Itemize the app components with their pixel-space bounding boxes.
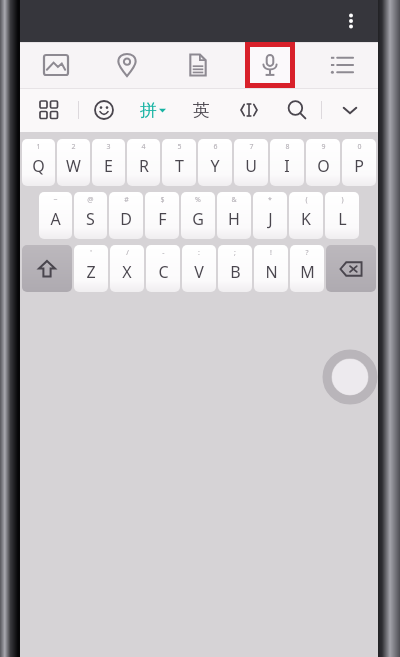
staticText: ; (234, 248, 236, 258)
staticText: 拼 (140, 100, 157, 121)
button[interactable]: Floating assistant (326, 353, 374, 401)
staticText: ) (341, 195, 344, 205)
staticText: N (265, 261, 278, 283)
staticText: W (66, 155, 81, 177)
staticText: G (192, 208, 204, 230)
staticText: 0 (357, 142, 362, 152)
button[interactable]: 1 (22, 139, 55, 186)
button[interactable]: 8 (270, 139, 304, 186)
button[interactable]: Hide keyboard (322, 88, 378, 132)
staticText: / (126, 248, 129, 258)
button[interactable]: ; (218, 245, 252, 292)
staticText: C (158, 261, 169, 283)
button[interactable]: 3 (92, 139, 125, 186)
button[interactable]: Insert image (20, 42, 91, 88)
staticText: J (268, 208, 273, 230)
button[interactable]: Keyboard layouts (20, 88, 78, 132)
staticText: Q (32, 155, 45, 177)
staticText: 8 (285, 142, 290, 152)
button[interactable]: $ (145, 192, 179, 239)
staticText: S (86, 208, 95, 230)
staticText: 英 (193, 100, 210, 121)
button[interactable]: 拼 (128, 88, 177, 132)
staticText: U (245, 155, 257, 177)
staticText: $ (160, 195, 165, 205)
staticText: * (268, 195, 272, 205)
staticText: M (300, 261, 315, 283)
staticText: ! (270, 248, 272, 258)
staticText: & (231, 195, 237, 205)
staticText: E (104, 155, 113, 177)
button[interactable]: ) (325, 192, 359, 239)
button[interactable]: List (306, 42, 378, 88)
staticText: % (195, 195, 201, 205)
button[interactable]: More options (338, 8, 364, 34)
button[interactable]: & (217, 192, 251, 239)
button[interactable]: * (253, 192, 287, 239)
button[interactable]: ! (254, 245, 288, 292)
button[interactable]: ' (74, 245, 108, 292)
staticText: B (230, 261, 241, 283)
staticText: 9 (321, 142, 326, 152)
button[interactable]: Location (91, 42, 162, 88)
button[interactable]: ~ (39, 192, 72, 239)
staticText: 2 (71, 142, 76, 152)
button[interactable]: Search (273, 88, 321, 132)
staticText: 5 (177, 142, 182, 152)
button[interactable]: Backspace (326, 245, 376, 292)
staticText: F (158, 208, 167, 230)
staticText: 7 (249, 142, 254, 152)
staticText: 6 (213, 142, 218, 152)
button[interactable]: Symbols (225, 88, 273, 132)
staticText: : (198, 248, 200, 258)
staticText: ( (305, 195, 308, 205)
staticText: P (354, 155, 364, 177)
button[interactable]: % (181, 192, 215, 239)
button[interactable]: 4 (127, 139, 160, 186)
staticText: H (228, 208, 240, 230)
staticText: X (122, 261, 132, 283)
staticText: Y (210, 155, 220, 177)
staticText: T (175, 155, 184, 177)
button[interactable]: / (110, 245, 144, 292)
button[interactable]: 9 (306, 139, 340, 186)
button[interactable]: Voice input (234, 42, 306, 88)
staticText: - (162, 248, 165, 258)
button[interactable]: Emoji (79, 88, 128, 132)
staticText: L (338, 208, 347, 230)
button[interactable]: - (146, 245, 180, 292)
staticText: 1 (36, 142, 41, 152)
staticText: ? (305, 248, 309, 258)
button[interactable]: 2 (57, 139, 90, 186)
staticText: A (50, 208, 61, 230)
button[interactable]: 5 (162, 139, 196, 186)
button[interactable]: # (109, 192, 143, 239)
button[interactable]: 6 (198, 139, 232, 186)
staticText: D (120, 208, 132, 230)
button[interactable]: 英 (177, 88, 225, 132)
staticText: I (284, 155, 290, 177)
staticText: Z (86, 261, 96, 283)
button[interactable]: @ (74, 192, 107, 239)
staticText: 3 (106, 142, 111, 152)
button[interactable]: : (182, 245, 216, 292)
staticText: @ (87, 195, 94, 205)
button[interactable]: 7 (234, 139, 268, 186)
staticText: K (301, 208, 311, 230)
button[interactable]: ? (290, 245, 324, 292)
staticText: ~ (53, 195, 58, 205)
button[interactable]: Document (162, 42, 234, 88)
staticText: O (317, 155, 330, 177)
button[interactable]: Shift (22, 245, 72, 292)
button[interactable]: ( (289, 192, 323, 239)
staticText: # (124, 195, 129, 205)
staticText: R (139, 155, 149, 177)
staticText: V (194, 261, 204, 283)
staticText: 4 (141, 142, 146, 152)
button[interactable]: 0 (342, 139, 376, 186)
staticText: ' (90, 248, 92, 258)
